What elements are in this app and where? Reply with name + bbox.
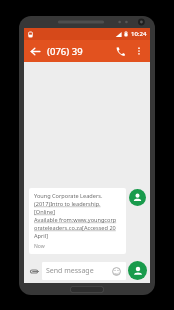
button[interactable]: Emoji (110, 265, 122, 277)
staticText: April] (34, 232, 49, 240)
staticText: (2017)Intro to leadership.[Online] (34, 200, 121, 216)
button[interactable]: Call (110, 41, 130, 61)
staticText: orateleaders.co.za[Accessed 20 (34, 224, 116, 232)
staticText: Available from:www.youngcorp (34, 216, 117, 224)
button[interactable]: Back (24, 40, 46, 62)
staticText: 10:24 (131, 30, 147, 38)
staticText: Young Corporate Leaders. (34, 192, 103, 200)
button[interactable]: Contact avatar (129, 189, 146, 206)
button[interactable]: More options (130, 42, 148, 60)
staticText: (076) 39 (47, 45, 83, 58)
staticText: Now (34, 243, 45, 250)
button[interactable]: Send message (42, 262, 126, 280)
button[interactable]: Send (128, 261, 147, 280)
button[interactable]: Attach (26, 263, 42, 279)
staticText: Send message (46, 266, 94, 276)
button[interactable]: Young Corporate Leaders. (29, 188, 126, 254)
